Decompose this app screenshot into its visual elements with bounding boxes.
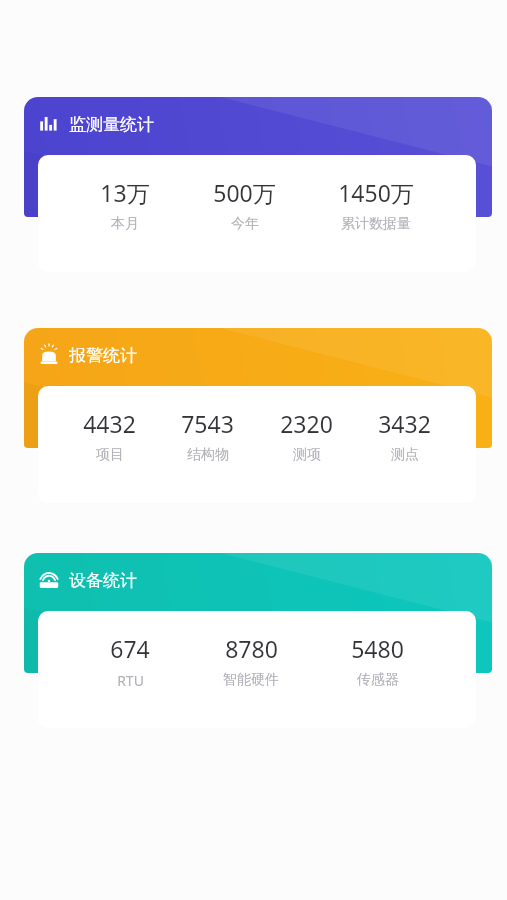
other: Device statistics bbox=[38, 569, 60, 591]
staticText: 本月 bbox=[111, 215, 139, 233]
staticText: 4432 bbox=[83, 408, 136, 439]
staticText: 项目 bbox=[96, 446, 124, 464]
staticText: 设备统计 bbox=[69, 570, 137, 591]
staticText: 8780 bbox=[225, 633, 278, 664]
staticText: 智能硬件 bbox=[223, 671, 279, 689]
button[interactable]: Monitoring statistics bbox=[0, 97, 507, 272]
staticText: 1450万 bbox=[338, 177, 414, 208]
button[interactable]: Alarm statistics bbox=[0, 328, 507, 503]
staticText: 3432 bbox=[378, 408, 431, 439]
staticText: 500万 bbox=[213, 177, 276, 208]
staticText: 测项 bbox=[293, 446, 321, 464]
staticText: 7543 bbox=[181, 408, 234, 439]
other: Monitoring statistics bbox=[38, 113, 60, 135]
staticText: 报警统计 bbox=[69, 345, 137, 366]
staticText: 今年 bbox=[231, 215, 259, 233]
other: Alarm statistics bbox=[38, 344, 60, 366]
staticText: 监测量统计 bbox=[69, 114, 154, 135]
staticText: 674 bbox=[110, 633, 150, 664]
staticText: 结构物 bbox=[187, 446, 229, 464]
staticText: RTU bbox=[117, 671, 144, 690]
staticText: 传感器 bbox=[357, 671, 399, 689]
staticText: 测点 bbox=[391, 446, 419, 464]
staticText: 13万 bbox=[100, 177, 150, 208]
staticText: 2320 bbox=[280, 408, 333, 439]
staticText: 累计数据量 bbox=[341, 215, 411, 233]
staticText: 5480 bbox=[351, 633, 404, 664]
button[interactable]: Device statistics bbox=[0, 553, 507, 728]
